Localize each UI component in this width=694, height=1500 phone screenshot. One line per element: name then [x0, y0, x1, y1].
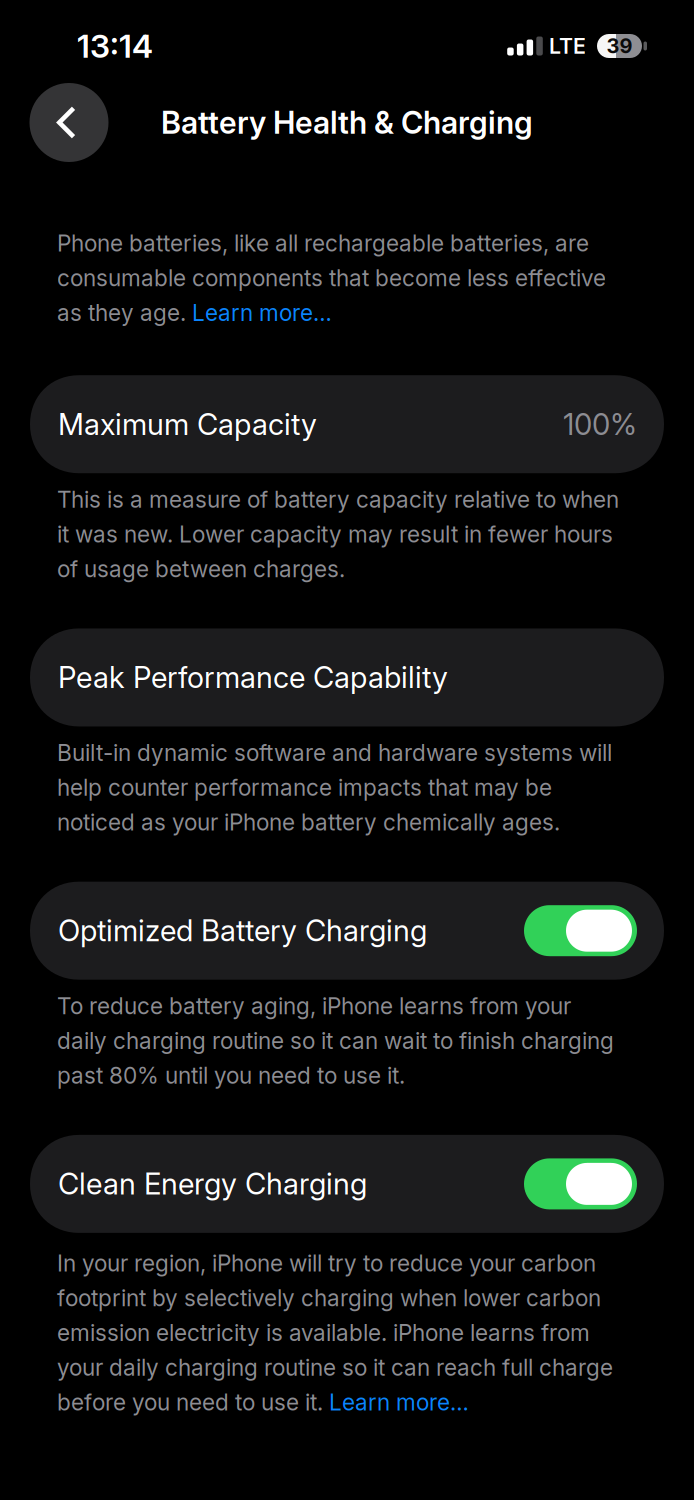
button[interactable]: Maximum Capacity	[0, 375, 694, 473]
staticText: In your region, iPhone will try to reduc…	[57, 1250, 613, 1416]
staticText: Phone batteries, like all rechargeable b…	[57, 230, 606, 326]
button[interactable]: Clean Energy Charging	[0, 1135, 694, 1233]
button[interactable]: Back	[29, 83, 108, 162]
staticText: Optimized Battery Charging	[58, 913, 427, 948]
staticText: Maximum Capacity	[58, 407, 317, 441]
staticText: Peak Performance Capability	[58, 660, 448, 695]
staticText: This is a measure of battery capacity re…	[57, 486, 619, 582]
staticText: 39	[606, 34, 632, 58]
staticText: To reduce battery aging, iPhone learns f…	[57, 993, 614, 1089]
staticText: Clean Energy Charging	[58, 1167, 367, 1201]
button[interactable]: Optimized Battery Charging	[0, 882, 694, 980]
staticText: 13:14	[77, 27, 153, 65]
staticText: LTE	[549, 33, 586, 59]
staticText: Battery Health & Charging	[161, 104, 533, 141]
staticText: 100%	[563, 407, 637, 441]
staticText: Built-in dynamic software and hardware s…	[57, 739, 612, 836]
button[interactable]: Peak Performance Capability	[0, 628, 694, 726]
